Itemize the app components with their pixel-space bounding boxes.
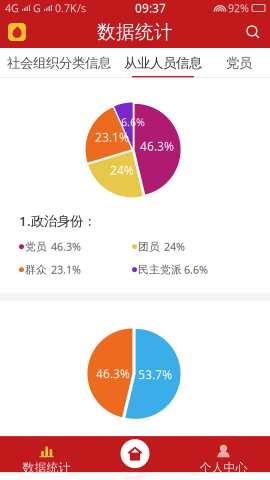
button[interactable]: 数据统计 [0,441,93,475]
staticText: 1.政治身份： [19,212,96,230]
staticText: 民主党派 [138,263,182,276]
staticText: 92% [228,1,249,15]
staticText: 数据统计 [22,460,70,475]
staticText: 团员 [138,240,160,253]
staticText: 23.1% [95,129,129,145]
staticText: 党员 [25,240,47,253]
staticText: 党员 [226,55,252,71]
staticText: 数据统计 [97,20,173,43]
staticText: G [33,1,41,15]
staticText: 6.6% [184,263,208,277]
button[interactable]: 首页 [117,436,152,480]
staticText: 社会组织分类信息 [7,55,111,71]
staticText: 24% [110,162,134,178]
button[interactable]: 社会组织分类信息 [0,48,118,78]
button[interactable]: 个人中心 [177,441,270,475]
staticText: 09:37 [135,0,166,16]
button[interactable]: 党员 [208,48,270,78]
button[interactable]: App logo [0,16,34,48]
staticText: 0.7K/s [55,1,86,15]
staticText: 2.性别占比： [19,436,96,453]
button[interactable]: 从业人员信息 [118,48,208,78]
staticText: 46.3% [96,366,130,382]
staticText: 46.3% [51,240,81,254]
button[interactable]: Search [236,16,270,48]
staticText: 4G [5,1,19,15]
staticText: 23.1% [51,263,81,277]
staticText: 53.7% [138,367,172,383]
staticText: 从业人员信息 [124,55,202,71]
staticText: 群众 [25,263,47,276]
staticText: 46.3% [140,138,174,154]
staticText: 首页 [123,473,147,480]
staticText: 个人中心 [199,460,247,475]
staticText: 6.6% [121,115,145,129]
staticText: 24% [164,240,185,254]
